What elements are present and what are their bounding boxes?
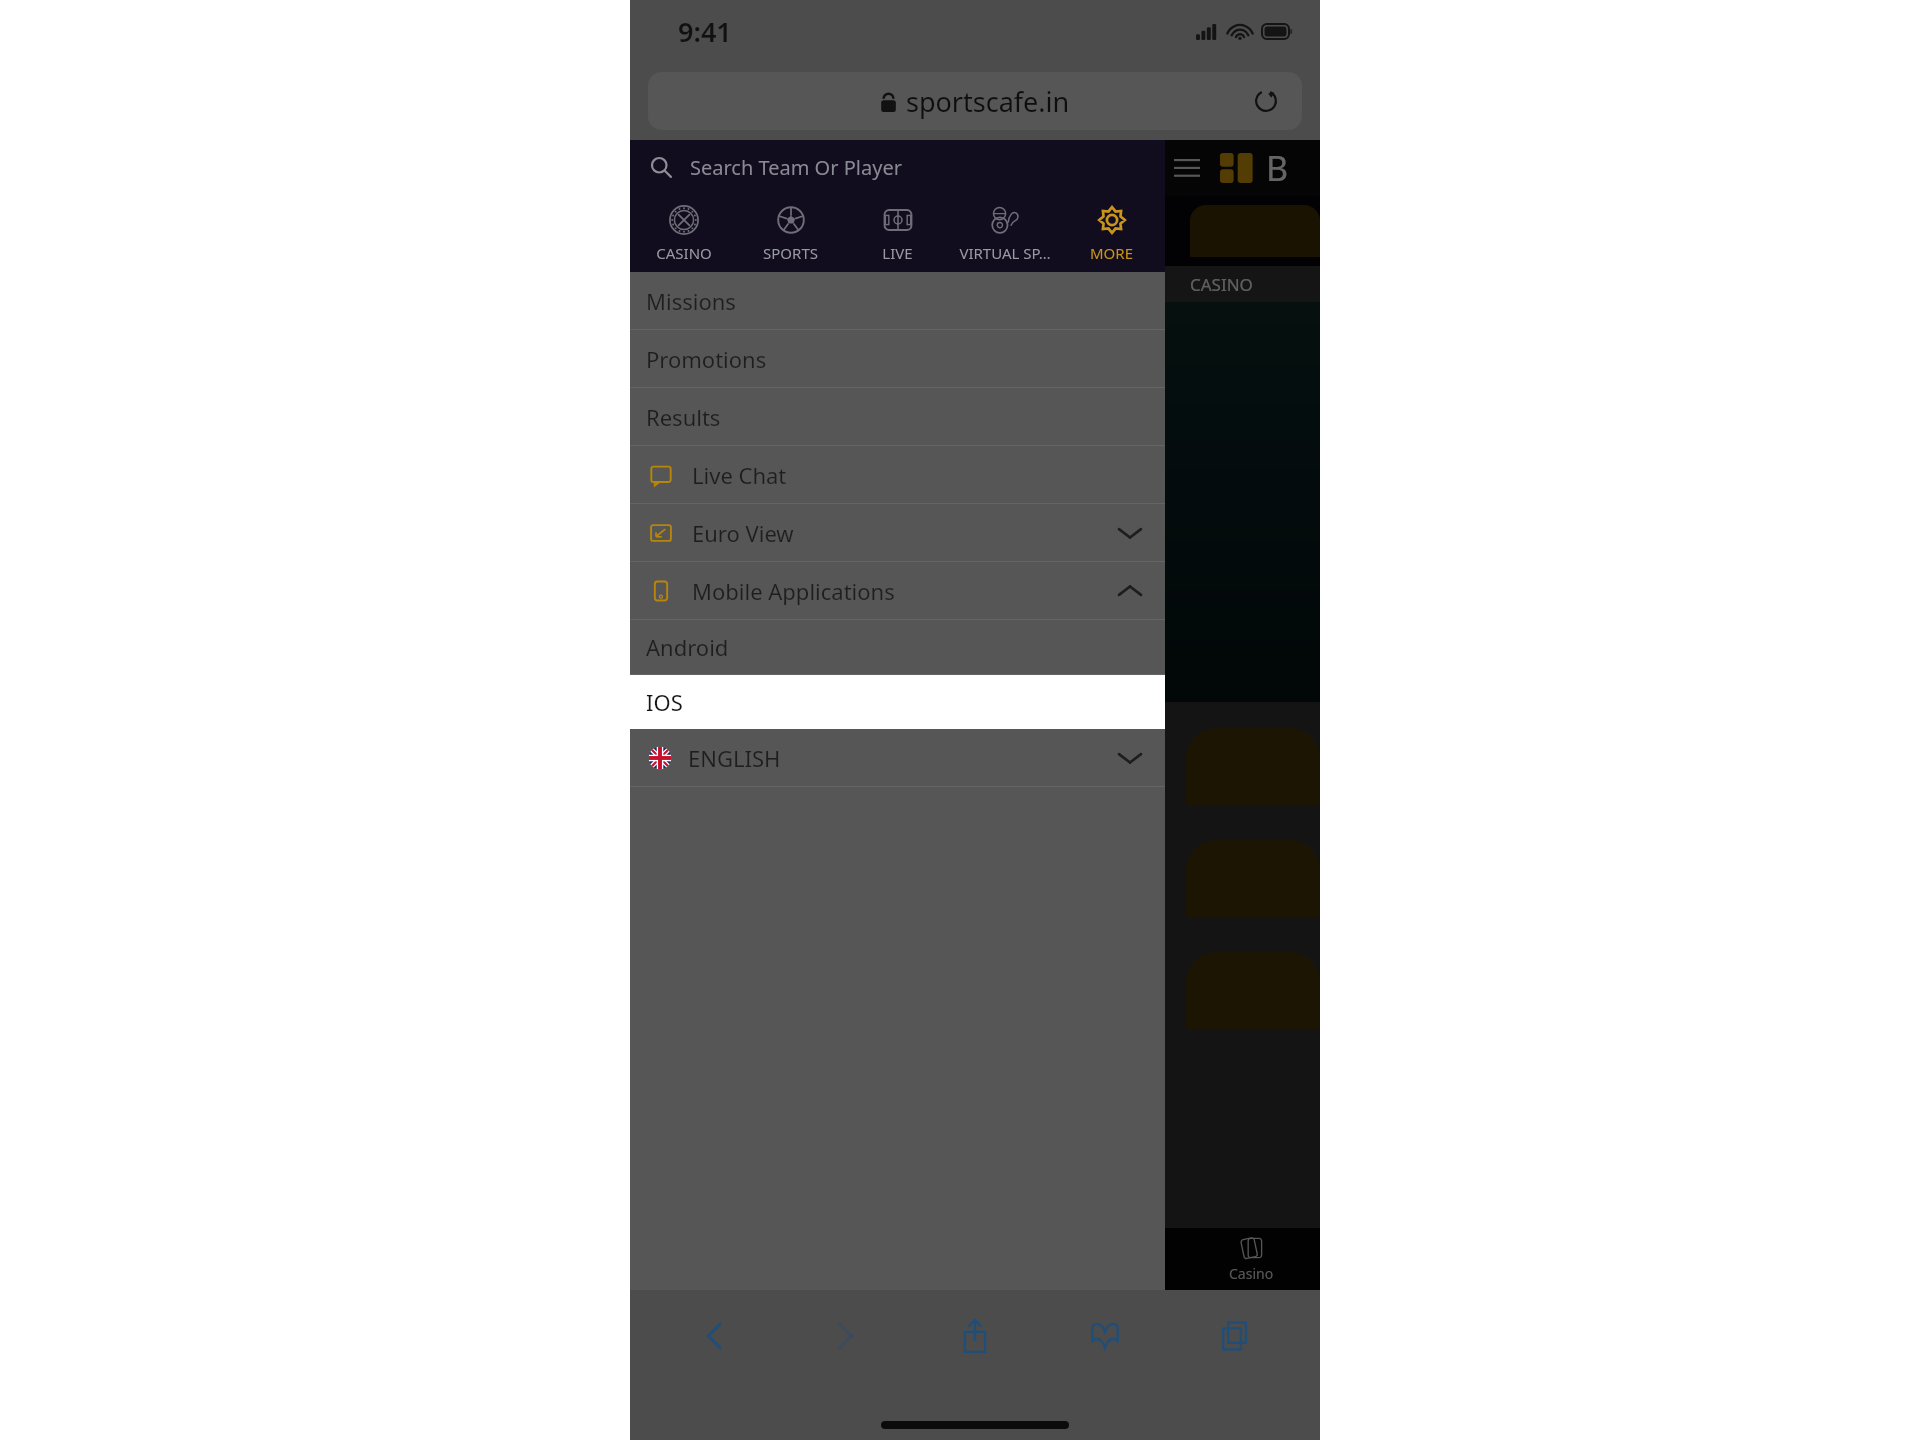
staticText: VIRTUAL SP…	[959, 243, 1051, 263]
button[interactable]: IOS	[630, 675, 1165, 729]
staticText: Search Team Or Player	[690, 154, 902, 181]
staticText: Promotions	[646, 344, 767, 374]
button[interactable]: Missions	[630, 272, 1165, 329]
button[interactable]: Reload	[1248, 83, 1284, 119]
staticText: B	[1266, 145, 1289, 191]
button[interactable]: SPORTS	[737, 194, 844, 272]
staticText: 9:41	[678, 13, 732, 50]
staticText: sportscafe.in	[906, 83, 1070, 120]
staticText: LIVE	[882, 243, 913, 263]
staticText: MORE	[1090, 243, 1133, 263]
button[interactable]: Bookmarks	[1040, 1290, 1170, 1382]
button[interactable]: Search Team Or Player	[650, 140, 1165, 194]
staticText: SPORTS	[763, 243, 818, 263]
staticText: Mobile Applications	[692, 576, 895, 606]
staticText: CASINO	[1190, 273, 1253, 296]
staticText: Live Chat	[692, 460, 787, 490]
button[interactable]: LIVE	[844, 194, 951, 272]
button[interactable]: Live Chat	[630, 446, 1165, 503]
staticText: Results	[646, 402, 721, 432]
staticText: Missions	[646, 286, 736, 316]
button[interactable]: Back	[650, 1290, 780, 1382]
button[interactable]: Tabs	[1170, 1290, 1300, 1382]
button[interactable]: CASINO	[630, 194, 737, 272]
button[interactable]: Promotions	[630, 330, 1165, 387]
staticText: ENGLISH	[688, 743, 781, 773]
staticText: Euro View	[692, 518, 794, 548]
button[interactable]: VIRTUAL SP…	[951, 194, 1058, 272]
button[interactable]: sportscafe.in	[648, 72, 1302, 130]
staticText: CASINO	[656, 243, 712, 263]
staticText: Android	[646, 632, 729, 662]
button[interactable]: Results	[630, 388, 1165, 445]
staticText: Casino	[1229, 1264, 1274, 1283]
button[interactable]: Euro View	[630, 504, 1165, 561]
button[interactable]: MORE	[1058, 194, 1165, 272]
button[interactable]: Share	[910, 1290, 1040, 1382]
button[interactable]: ENGLISH	[630, 729, 1165, 786]
button[interactable]: Mobile Applications	[630, 562, 1165, 619]
staticText: IOS	[646, 687, 683, 717]
button[interactable]: Android	[630, 620, 1165, 674]
